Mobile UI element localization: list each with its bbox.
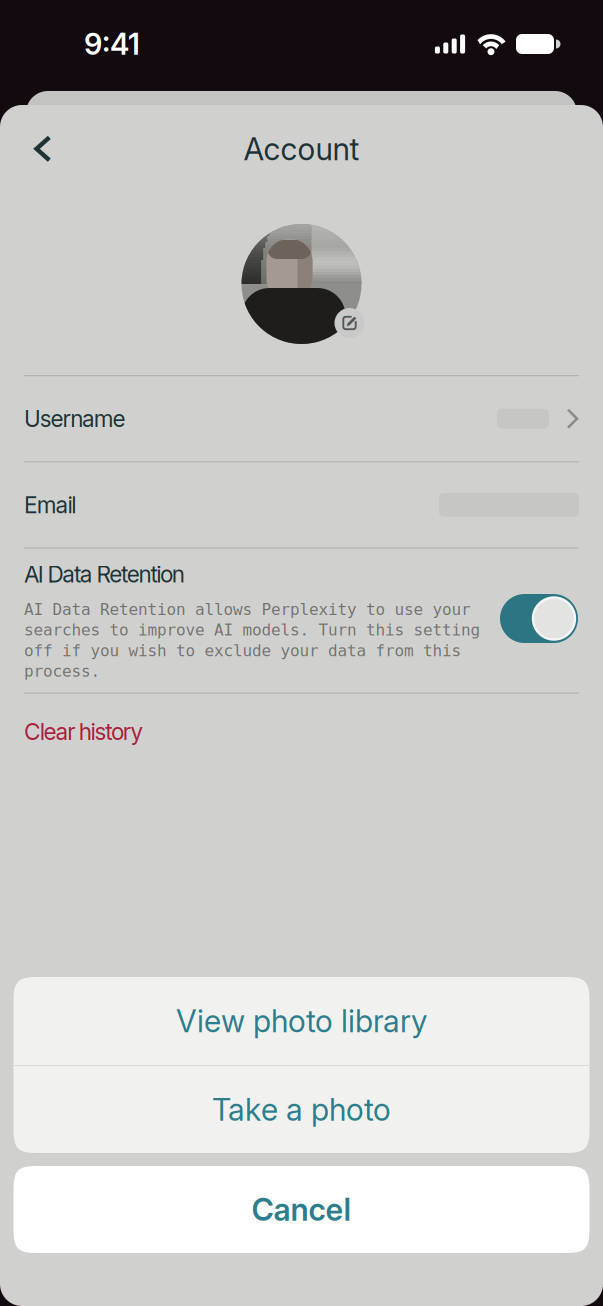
button[interactable]: Take a photo <box>13 1066 589 1153</box>
staticText: Username <box>24 405 126 432</box>
staticText: 9:41 <box>84 26 140 62</box>
button[interactable]: View photo library <box>13 977 589 1065</box>
staticText: Take a photo <box>212 1091 391 1128</box>
staticText: Cancel <box>251 1191 351 1228</box>
button[interactable]: Cancel <box>13 1166 589 1253</box>
button[interactable]: Change profile photo <box>241 224 361 344</box>
staticText: Account <box>243 130 359 167</box>
button[interactable]: AI Data Retention <box>500 594 578 643</box>
staticText: View photo library <box>176 1002 427 1039</box>
staticText: AI Data Retention allows Perplexity to u… <box>24 600 480 680</box>
button[interactable]: Back <box>12 118 74 180</box>
staticText: Clear history <box>24 718 144 745</box>
staticText: AI Data Retention <box>24 561 185 588</box>
staticText: Email <box>24 491 76 519</box>
button[interactable]: Username <box>0 376 603 461</box>
button[interactable]: Clear history <box>0 694 603 770</box>
